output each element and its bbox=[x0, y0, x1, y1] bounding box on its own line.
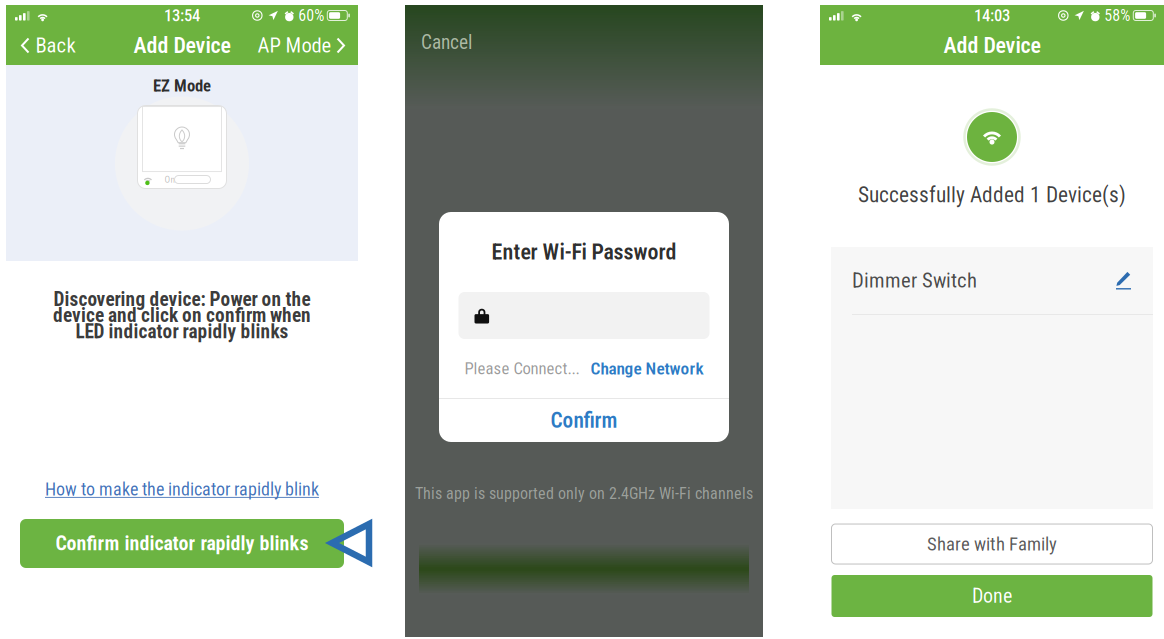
button[interactable]: Rename device bbox=[1111, 266, 1136, 294]
staticText: 60% bbox=[298, 6, 324, 25]
staticText: Please Connect... bbox=[464, 359, 579, 378]
button[interactable]: Confirm indicator rapidly blinks bbox=[20, 519, 344, 568]
staticText: On bbox=[164, 174, 175, 185]
staticText: Enter Wi-Fi Password bbox=[491, 239, 676, 265]
button[interactable]: Share with Family bbox=[831, 524, 1152, 564]
staticText: Discovering device: Power on the bbox=[53, 288, 310, 311]
button[interactable]: Back bbox=[6, 26, 85, 65]
staticText: Successfully Added 1 Device(s) bbox=[858, 182, 1126, 207]
staticText: 13:54 bbox=[164, 6, 200, 25]
staticText: Confirm indicator rapidly blinks bbox=[55, 532, 308, 555]
staticText: LED indicator rapidly blinks bbox=[75, 320, 288, 343]
staticText: Cancel bbox=[421, 31, 472, 54]
staticText: Share with Family bbox=[927, 533, 1057, 555]
staticText: device and click on confirm when bbox=[53, 304, 311, 327]
staticText: How to make the indicator rapidly blink bbox=[45, 479, 319, 500]
staticText: AP Mode bbox=[257, 33, 331, 58]
staticText: Add Device bbox=[133, 33, 230, 58]
staticText: 58% bbox=[1104, 6, 1130, 25]
button[interactable]: Done bbox=[831, 575, 1152, 617]
staticText: This app is supported only on 2.4GHz Wi-… bbox=[415, 484, 753, 503]
staticText: Back bbox=[35, 33, 75, 58]
button[interactable]: Change Network bbox=[590, 358, 703, 379]
staticText: Change Network bbox=[590, 358, 703, 379]
button[interactable]: How to make the indicator rapidly blink bbox=[39, 476, 325, 503]
staticText: Done bbox=[972, 584, 1012, 608]
staticText: Confirm bbox=[550, 408, 617, 433]
staticText: Add Device bbox=[943, 33, 1040, 58]
staticText: EZ Mode bbox=[153, 76, 211, 95]
button[interactable]: Cancel bbox=[405, 24, 484, 61]
staticText: Dimmer Switch bbox=[852, 268, 977, 293]
button[interactable]: Confirm bbox=[439, 399, 729, 442]
staticText: 14:03 bbox=[974, 6, 1010, 25]
button[interactable]: AP Mode bbox=[247, 26, 358, 65]
